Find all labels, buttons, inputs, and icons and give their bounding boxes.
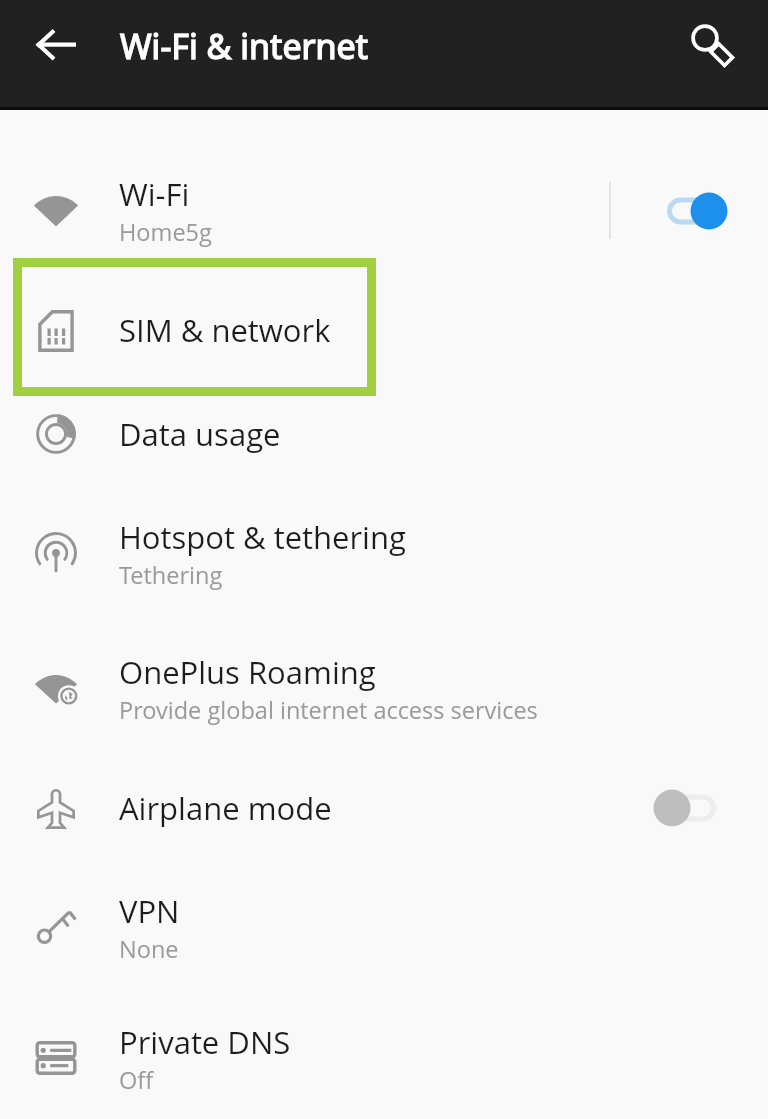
button[interactable]: Back [24, 12, 94, 82]
button[interactable]: Wi-Fi [0, 154, 768, 252]
button[interactable]: Airplane mode [0, 768, 768, 848]
staticText: Home5g [119, 216, 212, 248]
button[interactable]: Search [669, 4, 747, 82]
button[interactable]: Private DNS [0, 1002, 768, 1100]
staticText: Airplane mode [119, 787, 332, 829]
staticText: Off [119, 1064, 154, 1096]
button[interactable]: Wi-Fi toggle, on [667, 188, 737, 234]
staticText: Provide global internet access services [119, 694, 538, 726]
staticText: Private DNS [119, 1021, 291, 1063]
staticText: None [119, 933, 179, 965]
button[interactable]: Airplane mode toggle, off [667, 785, 737, 831]
button[interactable]: SIM & network [0, 290, 768, 370]
staticText: Data usage [119, 413, 281, 455]
staticText: OnePlus Roaming [119, 651, 376, 693]
button[interactable]: Hotspot & tethering [0, 497, 768, 595]
button[interactable]: Data usage [0, 394, 768, 474]
button[interactable]: VPN [0, 871, 768, 969]
staticText: VPN [119, 890, 180, 932]
staticText: Wi-Fi & internet [120, 23, 369, 69]
staticText: Tethering [119, 559, 223, 591]
button[interactable]: OnePlus Roaming [0, 632, 768, 730]
staticText: Hotspot & tethering [119, 516, 406, 558]
staticText: SIM & network [119, 309, 331, 351]
staticText: Wi-Fi [119, 173, 190, 215]
